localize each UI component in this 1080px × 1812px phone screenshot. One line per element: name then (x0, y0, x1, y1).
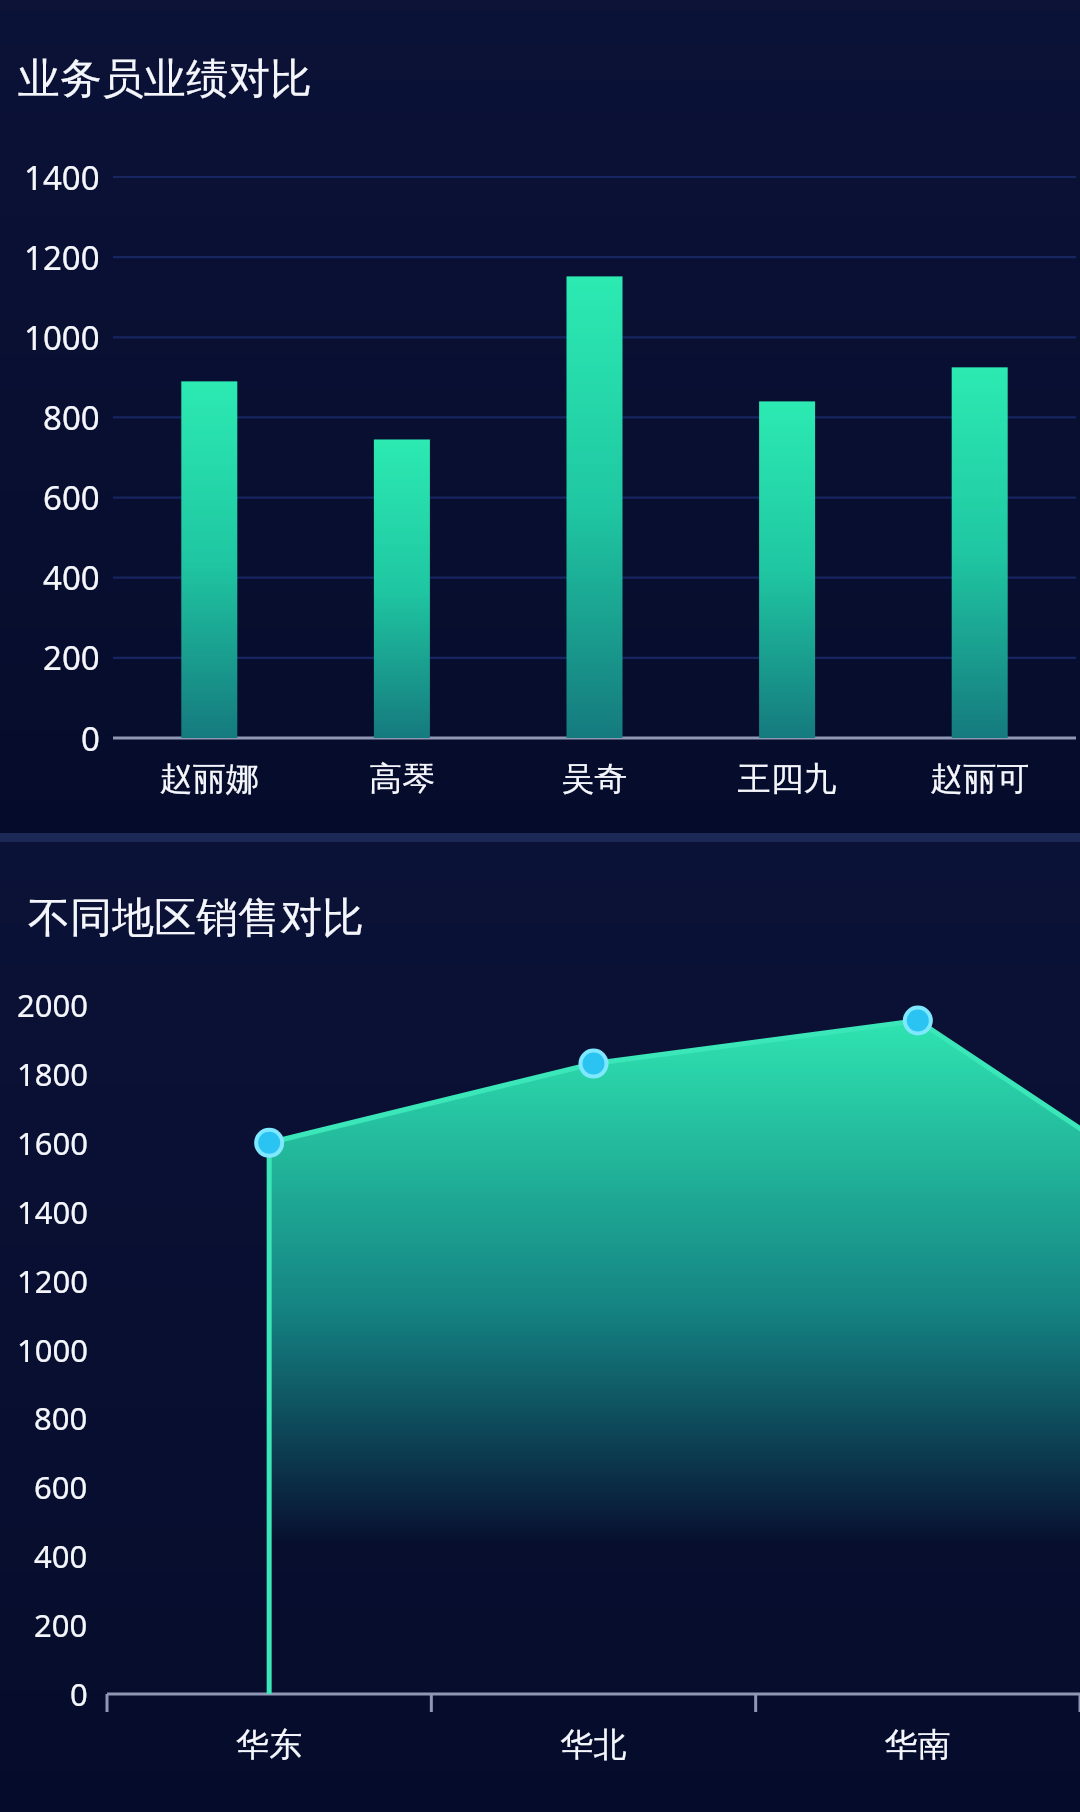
button[interactable]: 业务员业绩对比图 (0, 11, 1080, 833)
button[interactable]: 不同地区销售对比图 (0, 842, 1080, 1812)
